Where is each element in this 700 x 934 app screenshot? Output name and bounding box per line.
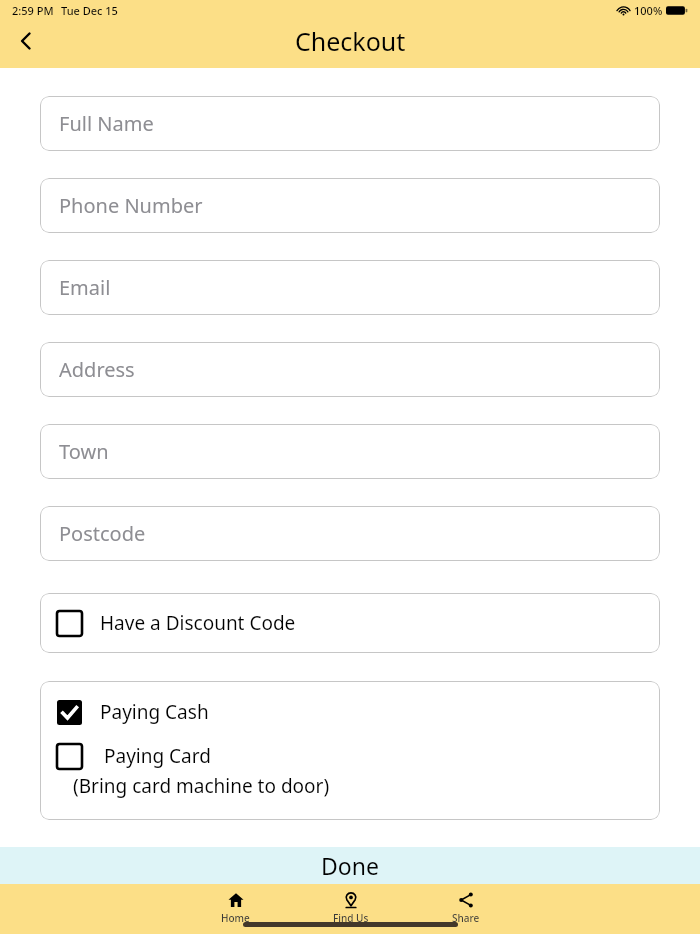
staticText: Tue Dec 15	[61, 3, 118, 18]
button[interactable]: Find Us	[293, 889, 408, 927]
button[interactable]: Town	[40, 424, 660, 479]
staticText: 2:59 PM	[12, 3, 54, 18]
button[interactable]: Paying Cash	[40, 681, 660, 743]
staticText: Checkout	[295, 24, 406, 58]
staticText: Paying Card	[104, 743, 211, 769]
staticText: (Bring card machine to door)	[73, 773, 330, 799]
staticText: Share	[452, 911, 480, 925]
button[interactable]: Have a Discount Code	[40, 593, 660, 653]
staticText: Home	[221, 911, 250, 925]
staticText: Email	[59, 274, 111, 301]
staticText: Postcode	[59, 520, 146, 547]
button[interactable]: Full Name	[40, 96, 660, 151]
staticText: Done	[321, 850, 379, 881]
button[interactable]: Postcode	[40, 506, 660, 561]
button[interactable]: Done	[0, 847, 700, 884]
staticText: Have a Discount Code	[100, 610, 296, 636]
staticText: Paying Cash	[100, 699, 209, 725]
staticText: 100%	[634, 3, 663, 18]
staticText: Phone Number	[59, 192, 203, 219]
staticText: Full Name	[59, 110, 154, 137]
button[interactable]: Address	[40, 342, 660, 397]
staticText: Address	[59, 356, 135, 383]
staticText: Find Us	[333, 911, 369, 925]
button[interactable]: Share	[408, 889, 523, 927]
button[interactable]: Back	[0, 15, 52, 67]
button[interactable]: Home	[178, 889, 293, 927]
staticText: Town	[59, 438, 109, 465]
button[interactable]: Email	[40, 260, 660, 315]
button[interactable]: Paying Card	[40, 743, 660, 799]
button[interactable]: Phone Number	[40, 178, 660, 233]
